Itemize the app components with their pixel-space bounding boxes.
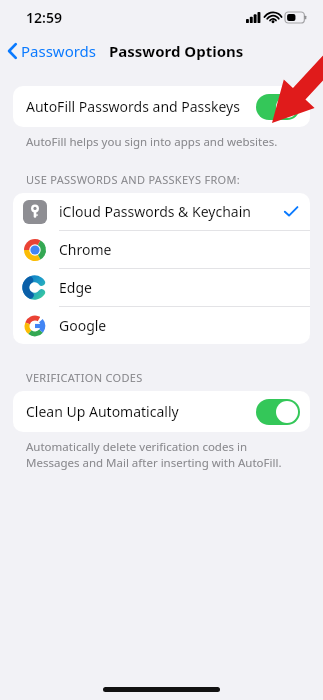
- staticText: Chrome: [59, 240, 112, 259]
- button[interactable]: Toggle on: [256, 94, 300, 120]
- staticText: Clean Up Automatically: [26, 402, 179, 421]
- staticText: Passwords: [21, 41, 97, 61]
- button[interactable]: Toggle on: [256, 399, 300, 425]
- button[interactable]: AutoFill Passwords and Passkeys: [13, 86, 310, 127]
- button[interactable]: Edge: [13, 269, 310, 307]
- staticText: Google: [59, 316, 107, 335]
- staticText: Edge: [59, 278, 92, 297]
- button[interactable]: iCloud Passwords & Keychain: [13, 193, 310, 231]
- staticText: AutoFill helps you sign into apps and we…: [26, 134, 301, 150]
- staticText: Password Options: [109, 41, 244, 61]
- button[interactable]: Google: [13, 307, 310, 344]
- staticText: USE PASSWORDS AND PASSKEYS FROM:: [26, 172, 301, 187]
- button[interactable]: Chrome: [13, 231, 310, 269]
- button[interactable]: Passwords: [0, 37, 103, 65]
- button[interactable]: Clean Up Automatically: [13, 391, 310, 432]
- staticText: AutoFill Passwords and Passkeys: [26, 97, 240, 116]
- staticText: iCloud Passwords & Keychain: [59, 202, 251, 221]
- staticText: Automatically delete verification codes …: [26, 439, 301, 470]
- staticText: VERIFICATION CODES: [26, 370, 301, 385]
- staticText: 12:59: [26, 8, 62, 27]
